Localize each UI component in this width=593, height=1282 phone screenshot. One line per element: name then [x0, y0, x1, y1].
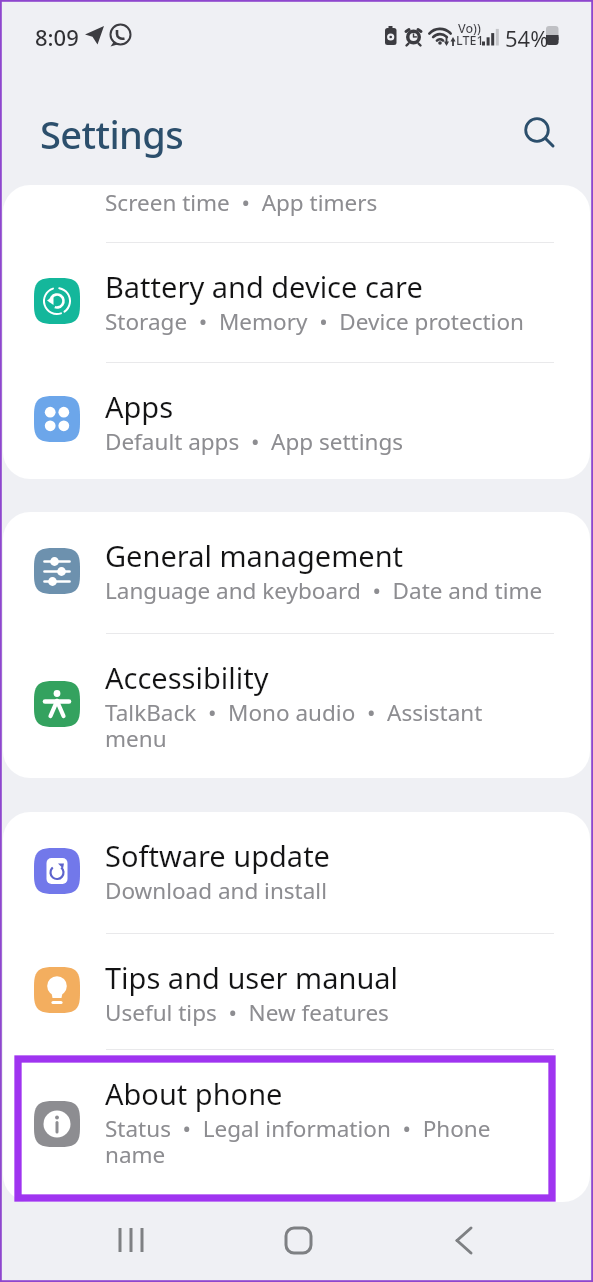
button[interactable]: Accessibility [3, 634, 590, 778]
staticText: Screen time • App timers [105, 187, 378, 218]
staticText: Storage • Memory • Device protection [105, 306, 524, 337]
staticText: About phone [105, 1074, 283, 1113]
button[interactable]: Back [419, 1202, 509, 1282]
button[interactable]: Recent apps [88, 1202, 178, 1282]
staticText: Settings [40, 108, 184, 160]
staticText: TalkBack • Mono audio • Assistant [105, 697, 483, 728]
button[interactable]: Software update [3, 812, 590, 933]
staticText: name [105, 1139, 166, 1170]
staticText: Status • Legal information • Phone [105, 1113, 491, 1144]
staticText: Vo)) [458, 20, 481, 37]
staticText: Download and install [105, 875, 327, 906]
button[interactable]: General management [3, 512, 590, 633]
button[interactable]: Screen time • App timers [3, 185, 590, 242]
staticText: Useful tips • New features [105, 997, 389, 1028]
button[interactable]: Search [509, 102, 565, 158]
staticText: 54% [505, 23, 549, 53]
staticText: Battery and device care [105, 267, 423, 306]
staticText: menu [105, 723, 167, 754]
staticText: Accessibility [105, 658, 269, 697]
staticText: Software update [105, 836, 330, 875]
staticText: Apps [105, 387, 174, 426]
staticText: General management [105, 536, 404, 575]
staticText: Tips and user manual [105, 958, 399, 997]
button[interactable]: Apps [3, 363, 590, 479]
staticText: Default apps • App settings [105, 426, 404, 457]
staticText: 8:09 [35, 22, 79, 52]
button[interactable]: Battery and device care [3, 243, 590, 362]
button[interactable]: Home [253, 1202, 343, 1282]
staticText: LTE1 [456, 32, 484, 49]
button[interactable]: About phone [3, 1050, 590, 1202]
staticText: Language and keyboard • Date and time [105, 575, 543, 606]
button[interactable]: Tips and user manual [3, 934, 590, 1049]
